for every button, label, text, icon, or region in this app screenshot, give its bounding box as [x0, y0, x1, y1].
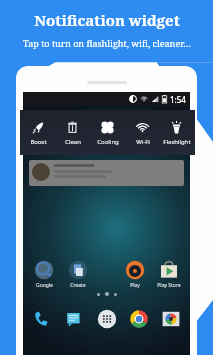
button[interactable]: Clean: [56, 118, 89, 148]
staticText: Google: [36, 282, 53, 289]
button[interactable]: Messages: [61, 306, 87, 332]
staticText: Boost: [30, 138, 47, 146]
button[interactable]: [29, 160, 184, 186]
staticText: Tap to turn on flashlight, wifi, cleaner…: [23, 37, 191, 49]
staticText: 1:54: [170, 94, 186, 105]
button[interactable]: Create: [63, 260, 93, 289]
staticText: Clean: [65, 138, 81, 146]
button[interactable]: All apps: [94, 306, 120, 332]
button[interactable]: Phone: [29, 306, 55, 332]
button[interactable]: Play Store: [154, 260, 184, 289]
button[interactable]: Flashlight: [160, 118, 193, 148]
staticText: Play: [130, 282, 140, 289]
button[interactable]: Play: [120, 260, 150, 289]
button[interactable]: Boost: [22, 118, 55, 148]
button[interactable]: Wi-Fi: [126, 118, 159, 148]
staticText: Notification widget: [34, 10, 180, 30]
button[interactable]: Camera: [158, 306, 184, 332]
staticText: Wi-Fi: [136, 138, 150, 146]
button[interactable]: Google: [29, 260, 59, 289]
staticText: Flashlight: [163, 138, 191, 146]
staticText: Play Store: [157, 282, 181, 289]
button[interactable]: Cooling: [91, 118, 124, 148]
staticText: Cooling: [97, 138, 119, 146]
staticText: Create: [70, 282, 86, 289]
button[interactable]: Chrome: [126, 306, 152, 332]
